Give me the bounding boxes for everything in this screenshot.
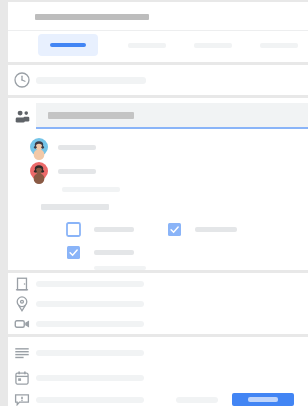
other: Description (8, 345, 36, 361)
button[interactable] (128, 34, 166, 56)
other: Guests (8, 103, 36, 129)
button[interactable]: Checked option (67, 246, 80, 259)
button[interactable] (232, 393, 294, 406)
other: Calendar (8, 370, 36, 386)
button[interactable]: Unchecked option (67, 223, 80, 236)
button[interactable]: Location (8, 294, 308, 314)
other: Video call (8, 316, 36, 332)
other: Room (8, 276, 36, 292)
button[interactable] (38, 34, 98, 56)
button[interactable] (8, 159, 308, 183)
other: Location (8, 296, 36, 312)
button[interactable]: Notification (8, 393, 36, 406)
button[interactable]: Calendar (8, 368, 308, 388)
button[interactable] (260, 34, 298, 56)
other: Time (8, 72, 36, 88)
button[interactable]: Time (8, 65, 308, 95)
button[interactable]: Checked option (168, 223, 181, 236)
button[interactable] (8, 135, 308, 159)
button[interactable] (36, 103, 308, 129)
button[interactable] (194, 34, 232, 56)
button[interactable]: Video call (8, 314, 308, 334)
button[interactable]: Room (8, 274, 308, 294)
button[interactable]: Description (8, 343, 308, 363)
